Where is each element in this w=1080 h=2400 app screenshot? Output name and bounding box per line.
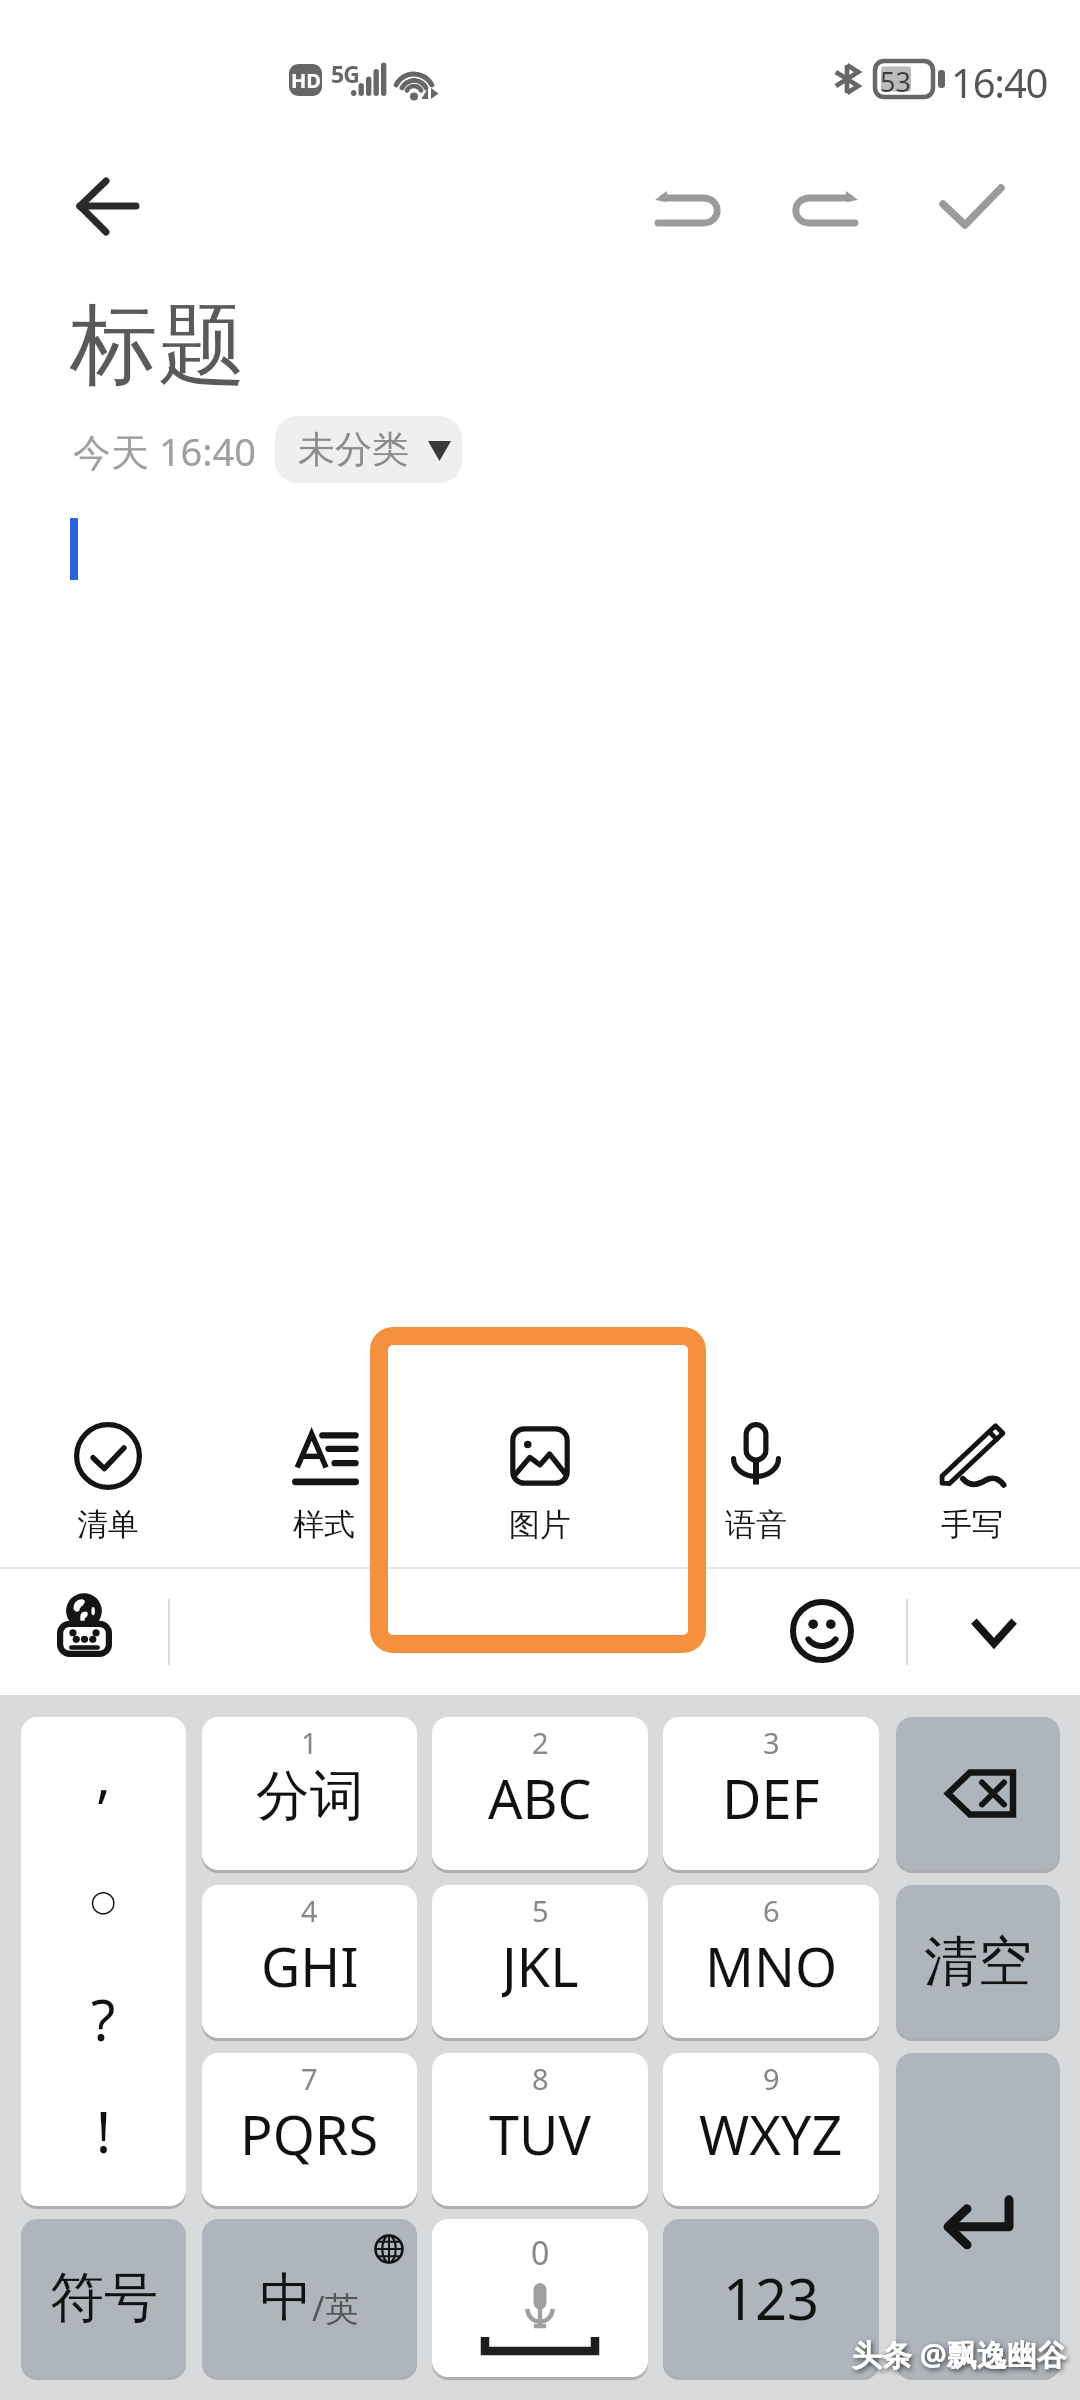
button[interactable]: Undo bbox=[629, 150, 741, 262]
staticText: , bbox=[96, 1737, 112, 1813]
staticText: JKL bbox=[502, 1929, 579, 1999]
button[interactable]: 7 bbox=[202, 2053, 417, 2206]
button[interactable]: Emoji bbox=[788, 1597, 856, 1665]
staticText: WXYZ bbox=[699, 2097, 843, 2167]
button[interactable]: 6 bbox=[663, 1885, 879, 2038]
staticText: 5 bbox=[532, 1891, 549, 1930]
staticText: 头条 @飘逸幽谷 bbox=[852, 2334, 1067, 2375]
staticText: 今天 16:40 bbox=[73, 425, 257, 477]
staticText: 4 bbox=[301, 1891, 318, 1930]
staticText: 123 bbox=[723, 2260, 820, 2336]
staticText: TUV bbox=[489, 2097, 591, 2167]
staticText: 5G bbox=[331, 58, 360, 89]
button[interactable]: Redo bbox=[772, 150, 884, 262]
staticText: 手写 bbox=[941, 1505, 1003, 1544]
staticText: HD bbox=[291, 67, 321, 94]
button[interactable]: Back bbox=[36, 150, 152, 266]
button[interactable]: 语音 bbox=[648, 1378, 864, 1567]
staticText: 3 bbox=[763, 1723, 780, 1762]
staticText: ! bbox=[96, 2093, 112, 2169]
staticText: 8 bbox=[532, 2059, 549, 2098]
staticText: 清空 bbox=[924, 1928, 1032, 1996]
button[interactable]: Input method bbox=[42, 1583, 126, 1667]
button[interactable]: 1 bbox=[202, 1717, 417, 1870]
button[interactable]: Voice input bbox=[432, 2219, 648, 2377]
staticText: 样式 bbox=[293, 1505, 355, 1544]
staticText: 中 bbox=[260, 2265, 312, 2331]
staticText: 53 bbox=[880, 63, 911, 100]
button[interactable]: 图片 bbox=[432, 1378, 648, 1567]
staticText: 语音 bbox=[725, 1505, 787, 1544]
button[interactable]: 5 bbox=[432, 1885, 648, 2038]
button[interactable]: Hide keyboard bbox=[956, 1593, 1032, 1669]
button[interactable]: 手写 bbox=[864, 1378, 1080, 1567]
staticText: ○ bbox=[90, 1883, 117, 1918]
staticText: 1 bbox=[301, 1723, 318, 1762]
button[interactable]: Done bbox=[916, 150, 1028, 262]
button[interactable]: 符号 bbox=[21, 2219, 186, 2377]
button[interactable]: 123 bbox=[663, 2219, 879, 2377]
staticText: DEF bbox=[722, 1761, 820, 1831]
button[interactable]: 清空 bbox=[896, 1885, 1060, 2038]
button[interactable]: Backspace bbox=[896, 1717, 1060, 1870]
staticText: MNO bbox=[705, 1929, 838, 1999]
staticText: 9 bbox=[763, 2059, 780, 2098]
staticText: 清单 bbox=[77, 1505, 139, 1544]
staticText: 标题 bbox=[70, 290, 246, 401]
staticText: 7 bbox=[301, 2059, 318, 2098]
staticText: GHI bbox=[261, 1929, 359, 1999]
staticText: ? bbox=[91, 1981, 116, 2057]
button[interactable]: 9 bbox=[663, 2053, 879, 2206]
staticText: /英 bbox=[312, 2285, 359, 2331]
staticText: 6 bbox=[763, 1891, 780, 1930]
button[interactable]: Enter bbox=[896, 2053, 1060, 2377]
button[interactable]: 4 bbox=[202, 1885, 417, 2038]
staticText: 2 bbox=[532, 1723, 549, 1762]
staticText: 分词 bbox=[256, 1762, 364, 1830]
staticText: 图片 bbox=[509, 1505, 571, 1544]
button[interactable]: 样式 bbox=[216, 1378, 432, 1567]
button[interactable]: 未分类 bbox=[275, 416, 462, 483]
button[interactable]: 3 bbox=[663, 1717, 879, 1870]
button[interactable]: Punctuation bbox=[21, 1717, 186, 2206]
button[interactable]: 8 bbox=[432, 2053, 648, 2206]
staticText: PQRS bbox=[240, 2097, 379, 2167]
staticText: 未分类 bbox=[298, 426, 409, 473]
staticText: 符号 bbox=[50, 2264, 158, 2332]
staticText: 0 bbox=[531, 2231, 550, 2275]
staticText: 16:40 bbox=[951, 55, 1048, 109]
button[interactable]: 2 bbox=[432, 1717, 648, 1870]
staticText: ABC bbox=[488, 1761, 592, 1831]
button[interactable]: 清单 bbox=[0, 1378, 216, 1567]
button[interactable]: 中 bbox=[202, 2219, 417, 2377]
